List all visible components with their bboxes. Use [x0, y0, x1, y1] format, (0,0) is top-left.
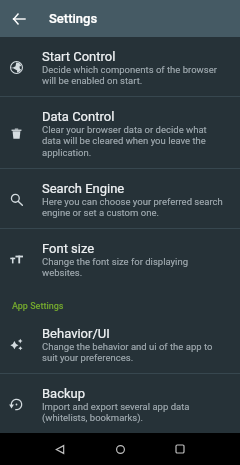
staticText: Import and export several app data (whit…	[42, 401, 227, 423]
staticText: App Settings	[12, 301, 64, 312]
staticText: Data Control	[42, 109, 115, 124]
button[interactable]: Data Control	[0, 97, 240, 168]
button[interactable]: Start Control	[0, 37, 240, 96]
button[interactable]: Back	[0, 0, 37, 37]
staticText: Font size	[42, 241, 95, 256]
staticText: Clear your browser data or decide what d…	[42, 124, 227, 158]
button[interactable]: Behavior/UI	[0, 314, 240, 373]
staticText: Search Engine	[42, 181, 125, 196]
button[interactable]: Backup	[0, 374, 240, 433]
button[interactable]: Home	[90, 433, 150, 465]
staticText: Decide which components of the browser w…	[42, 64, 227, 86]
staticText: Here you can choose your preferred searc…	[42, 196, 227, 218]
button[interactable]: Recents	[150, 433, 210, 465]
staticText: Change the behavior and ui of the app to…	[42, 341, 227, 363]
staticText: Change the font size for displaying webs…	[42, 256, 227, 278]
button[interactable]: Search Engine	[0, 169, 240, 228]
button[interactable]: Back	[30, 433, 90, 465]
staticText: Backup	[42, 386, 86, 401]
staticText: Start Control	[42, 49, 116, 64]
button[interactable]: Font size	[0, 229, 240, 288]
staticText: Settings	[49, 11, 98, 26]
staticText: Behavior/UI	[42, 326, 110, 341]
